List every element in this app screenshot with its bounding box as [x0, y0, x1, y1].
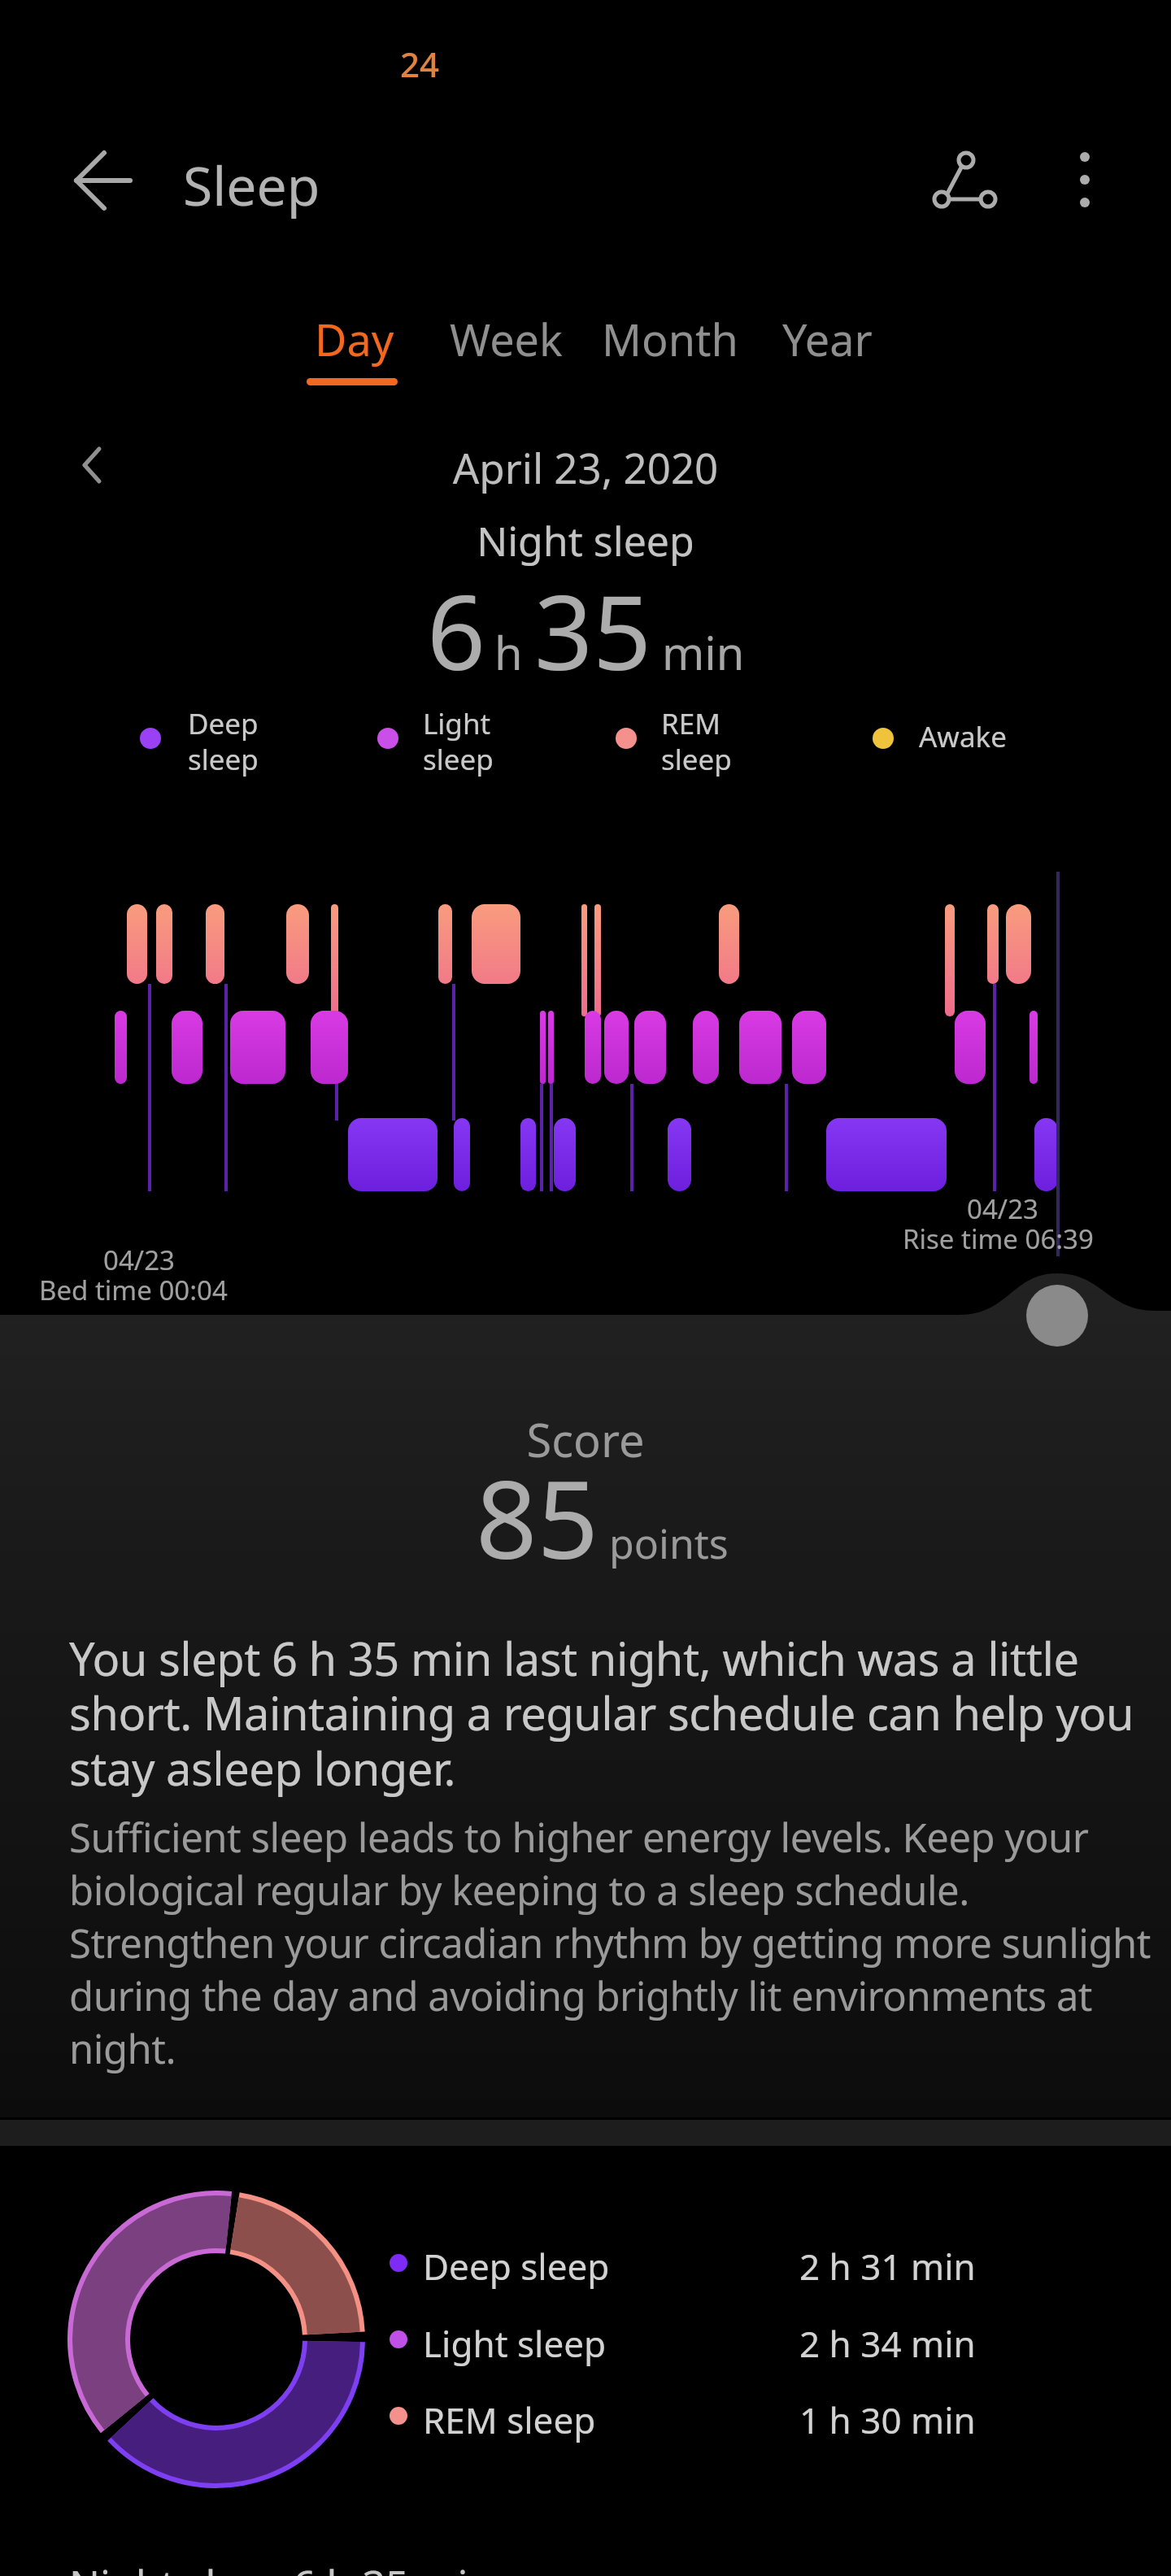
- staticText: 85: [476, 1444, 599, 1590]
- staticText: REM sleep: [661, 704, 732, 778]
- staticText: 04/23: [889, 1190, 1117, 1227]
- staticText: Light sleep: [423, 704, 494, 778]
- staticText: Night sleep: [0, 513, 1171, 568]
- staticText: Night sleep: [69, 2556, 287, 2576]
- button[interactable]: [1026, 1285, 1088, 1347]
- staticText: 04/23: [37, 1242, 241, 1278]
- staticText: 1 h 30 min: [799, 2395, 976, 2444]
- staticText: Rise time 06:39: [903, 1221, 1094, 1257]
- staticText: 24: [400, 41, 440, 87]
- staticText: 6: [427, 560, 486, 700]
- staticText: Light sleep: [423, 2319, 607, 2368]
- staticText: h: [494, 621, 523, 683]
- staticText: Bed time 00:04: [39, 1272, 228, 1308]
- button[interactable]: [915, 130, 1012, 228]
- staticText: min: [662, 621, 745, 683]
- staticText: 6 h 35 min: [293, 2556, 494, 2576]
- button[interactable]: Week: [450, 309, 563, 369]
- staticText: Sufficient sleep leads to higher energy …: [69, 1810, 1151, 2075]
- staticText: Sleep: [183, 148, 320, 221]
- button[interactable]: [49, 142, 130, 220]
- staticText: Deep sleep: [188, 704, 259, 778]
- staticText: 2 h 31 min: [799, 2242, 976, 2291]
- button[interactable]: Month: [602, 309, 738, 369]
- staticText: Awake: [919, 717, 1007, 756]
- button[interactable]: Year: [782, 309, 873, 369]
- staticText: REM sleep: [423, 2395, 596, 2444]
- staticText: Deep sleep: [423, 2242, 610, 2291]
- staticText: points: [609, 1516, 729, 1571]
- staticText: You slept 6 h 35 min last night, which w…: [69, 1627, 1134, 1799]
- staticText: 2 h 34 min: [799, 2319, 976, 2368]
- staticText: Score: [0, 1408, 1171, 1470]
- button[interactable]: [54, 429, 111, 494]
- button[interactable]: Day: [315, 309, 394, 369]
- button[interactable]: [1049, 130, 1122, 228]
- staticText: April 23, 2020: [0, 439, 1171, 495]
- staticText: 35: [534, 560, 652, 700]
